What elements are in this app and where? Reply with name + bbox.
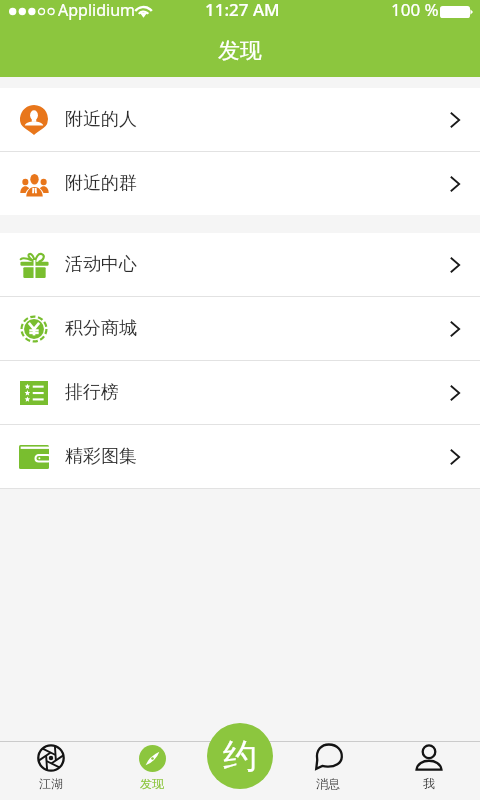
staticText: 活动中心 (65, 253, 137, 276)
button[interactable]: 约 Create post (207, 723, 273, 789)
staticText: 我 (423, 776, 435, 791)
button[interactable]: 消息 (292, 744, 364, 791)
button[interactable]: 附近的群 (0, 152, 480, 215)
button[interactable]: 我 (393, 744, 465, 791)
button[interactable]: 排行榜 (0, 361, 480, 424)
button[interactable]: 精彩图集 (0, 425, 480, 488)
button[interactable]: 附近的人 (0, 88, 480, 151)
button[interactable]: 江湖 (15, 744, 87, 791)
staticText: 江湖 (39, 776, 63, 791)
staticText: 100 % (391, 0, 439, 21)
staticText: 积分商城 (65, 317, 137, 340)
staticText: Applidium (58, 0, 135, 21)
staticText: 消息 (316, 776, 340, 791)
staticText: 发现 (140, 776, 164, 791)
staticText: 发现 (218, 37, 262, 65)
staticText: 排行榜 (65, 381, 119, 404)
button[interactable]: 活动中心 (0, 233, 480, 296)
staticText: 约 (223, 735, 257, 778)
staticText: 附近的人 (65, 108, 137, 131)
button[interactable]: 积分商城 (0, 297, 480, 360)
staticText: 11:27 AM (205, 0, 280, 21)
staticText: 精彩图集 (65, 445, 137, 468)
button[interactable]: 发现 (116, 744, 188, 791)
staticText: 附近的群 (65, 172, 137, 195)
